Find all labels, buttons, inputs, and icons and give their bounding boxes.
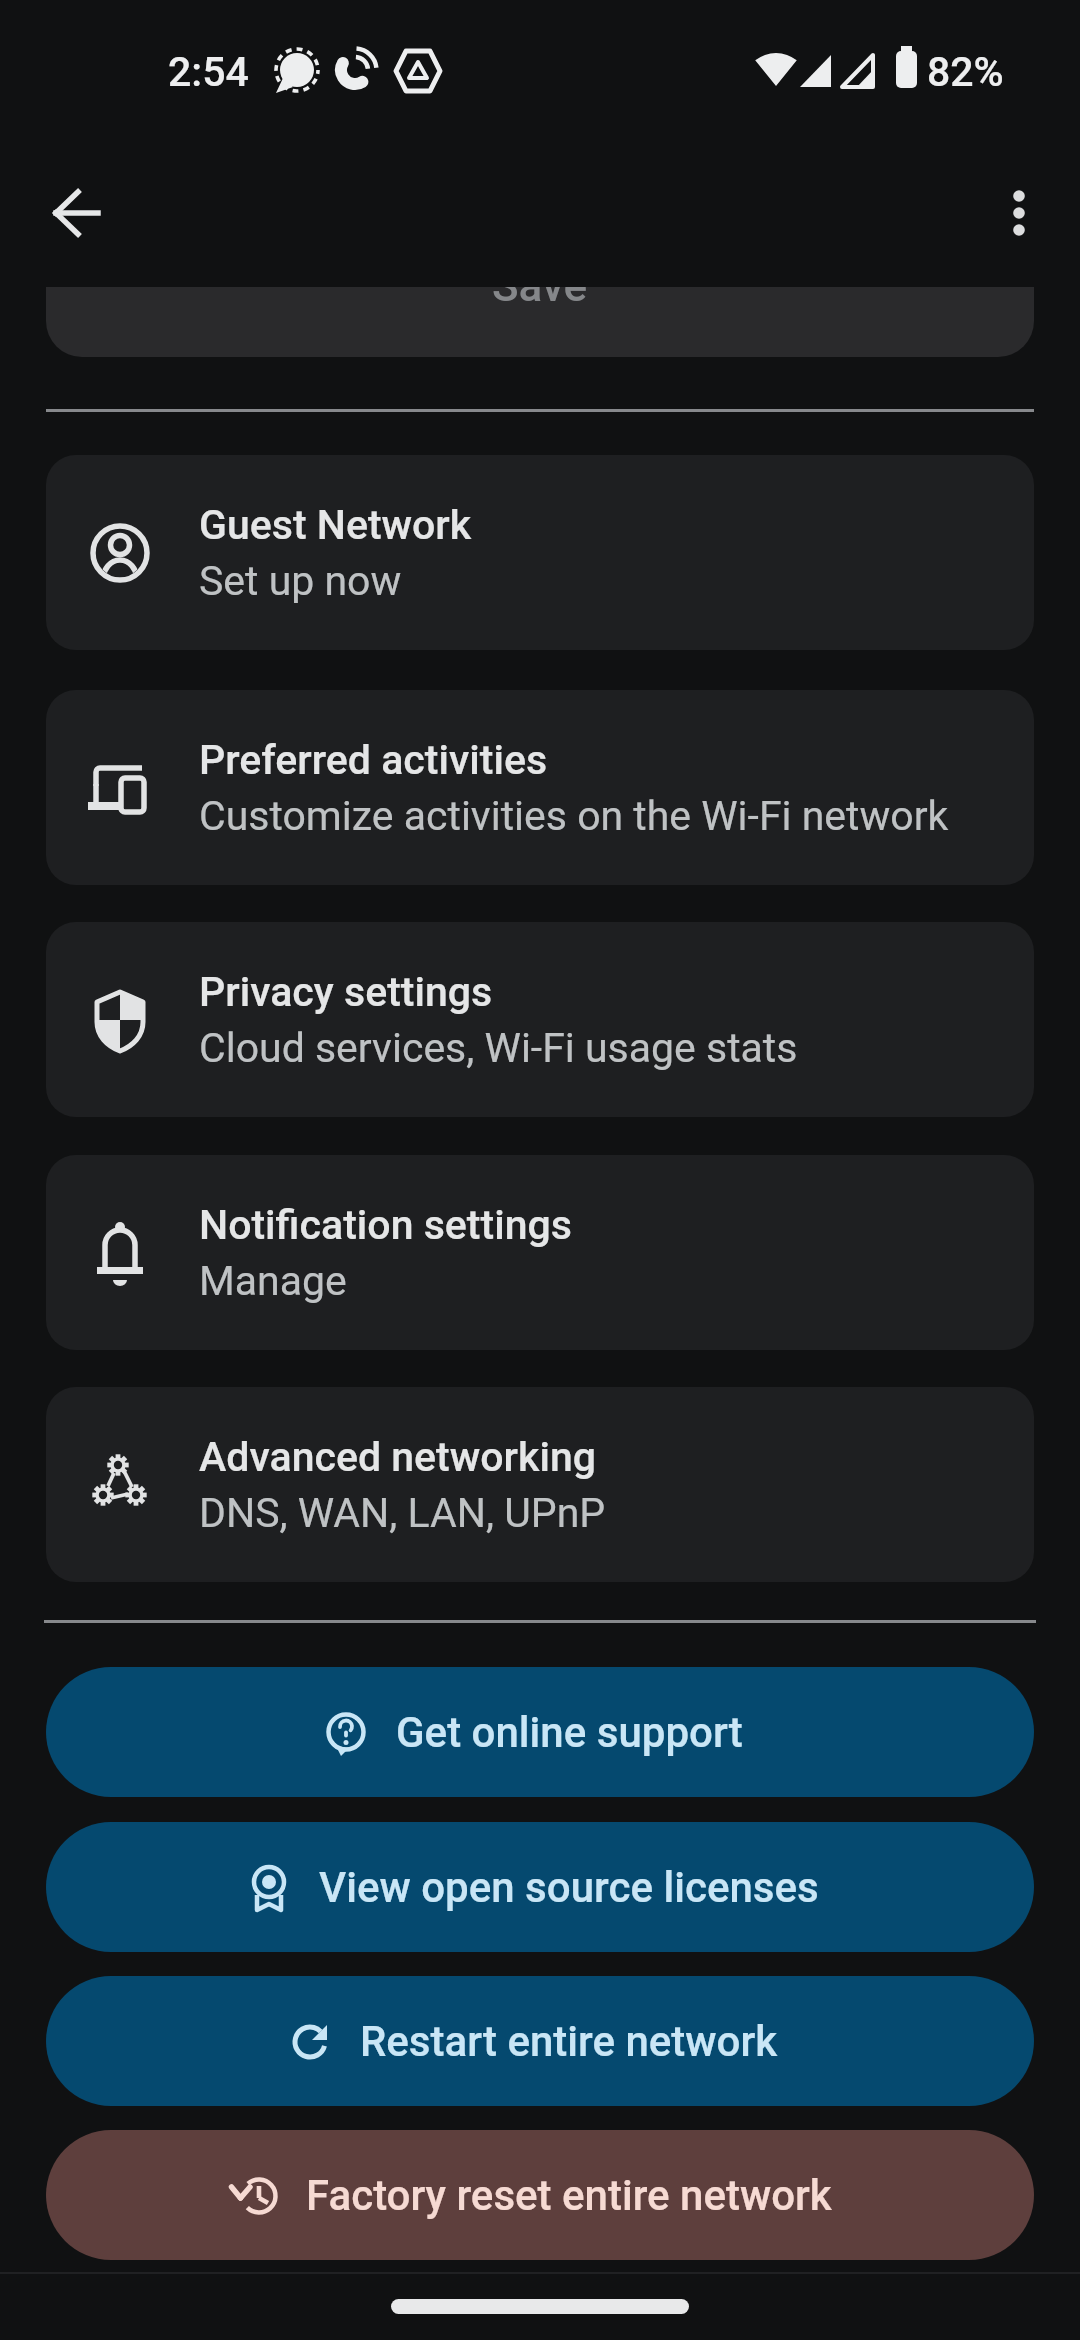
button[interactable]: Privacy settings [46,922,1034,1117]
button[interactable]: Factory reset entire network [46,2130,1034,2260]
staticText: Preferred activities [199,736,548,784]
staticText: Customize activities on the Wi-Fi networ… [199,792,949,840]
button[interactable]: Restart entire network [46,1976,1034,2106]
staticText: Manage [199,1257,347,1305]
staticText: Notification settings [199,1201,572,1249]
staticText: Guest Network [199,501,472,549]
button[interactable]: View open source licenses [46,1822,1034,1952]
staticText: Privacy settings [199,968,493,1016]
button[interactable]: Get online support [46,1667,1034,1797]
staticText: Get online support [396,1708,743,1757]
staticText: View open source licenses [319,1863,819,1912]
staticText: Factory reset entire network [306,2171,832,2220]
button[interactable]: Notification settings [46,1155,1034,1350]
button[interactable] [28,164,126,262]
button[interactable]: Guest Network [46,455,1034,650]
button[interactable]: Preferred activities [46,690,1034,885]
staticText: Advanced networking [199,1433,596,1481]
staticText: Set up now [199,557,402,605]
staticText: DNS, WAN, LAN, UPnP [199,1489,606,1537]
button[interactable] [970,164,1068,262]
staticText: 2:54 [168,48,249,96]
staticText: Cloud services, Wi-Fi usage stats [199,1024,798,1072]
button[interactable]: Advanced networking [46,1387,1034,1582]
staticText: 82% [927,48,1004,96]
staticText: Restart entire network [360,2017,778,2066]
staticText: Save [492,287,588,312]
